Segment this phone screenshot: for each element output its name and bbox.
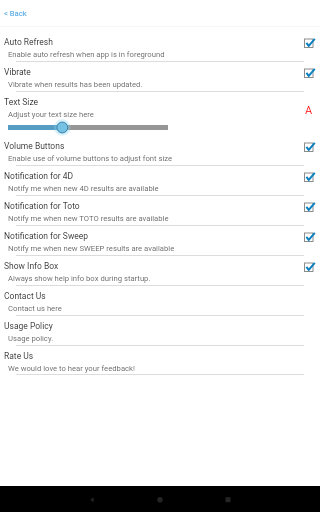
button[interactable]: Home [146, 486, 174, 512]
staticText: Usage policy. [8, 334, 54, 343]
button[interactable]: Text size slider [4, 120, 316, 136]
staticText: Notification for 4D [4, 171, 74, 181]
staticText: Enable auto refresh when app is in foreg… [8, 50, 165, 59]
staticText: Contact Us [4, 291, 46, 301]
button[interactable]: Back [78, 486, 106, 512]
staticText: Notify me when new SWEEP results are ava… [8, 244, 175, 253]
staticText: Text Size [4, 97, 39, 107]
staticText: Adjust your text size here [8, 110, 94, 119]
button[interactable]: Show Info Box [4, 256, 316, 286]
button[interactable]: Text Size [4, 92, 316, 120]
staticText: Vibrate [4, 67, 31, 77]
button[interactable]: Contact Us [4, 286, 316, 316]
button[interactable]: < Back [0, 0, 320, 26]
button[interactable]: Usage Policy [4, 316, 316, 346]
staticText: Volume Buttons [4, 141, 65, 151]
button[interactable]: Notification for 4D [4, 166, 316, 196]
staticText: < Back [4, 9, 27, 18]
button[interactable]: Rate Us [4, 346, 316, 375]
staticText: Notification for Toto [4, 201, 80, 211]
button[interactable]: Notification for Toto [4, 196, 316, 226]
staticText: Auto Refresh [4, 37, 53, 47]
button[interactable]: Recent apps [214, 486, 242, 512]
button[interactable]: Auto Refresh [4, 32, 316, 62]
staticText: Rate Us [4, 351, 34, 361]
button[interactable]: Notification for Sweep [4, 226, 316, 256]
staticText: Always show help info box during startup… [8, 274, 151, 283]
staticText: Contact us here [8, 304, 62, 313]
staticText: Notify me when new 4D results are availa… [8, 184, 159, 193]
button[interactable]: Vibrate [4, 62, 316, 92]
staticText: Notify me when new TOTO results are avai… [8, 214, 169, 223]
staticText: We would love to hear your feedback! [8, 364, 135, 373]
staticText: Notification for Sweep [4, 231, 89, 241]
staticText: Vibrate when results has been updated. [8, 80, 143, 89]
staticText: Show Info Box [4, 261, 59, 271]
staticText: A [305, 104, 313, 117]
staticText: Enable use of volume buttons to adjust f… [8, 154, 173, 163]
button[interactable]: Volume Buttons [4, 136, 316, 166]
staticText: Usage Policy [4, 321, 53, 331]
